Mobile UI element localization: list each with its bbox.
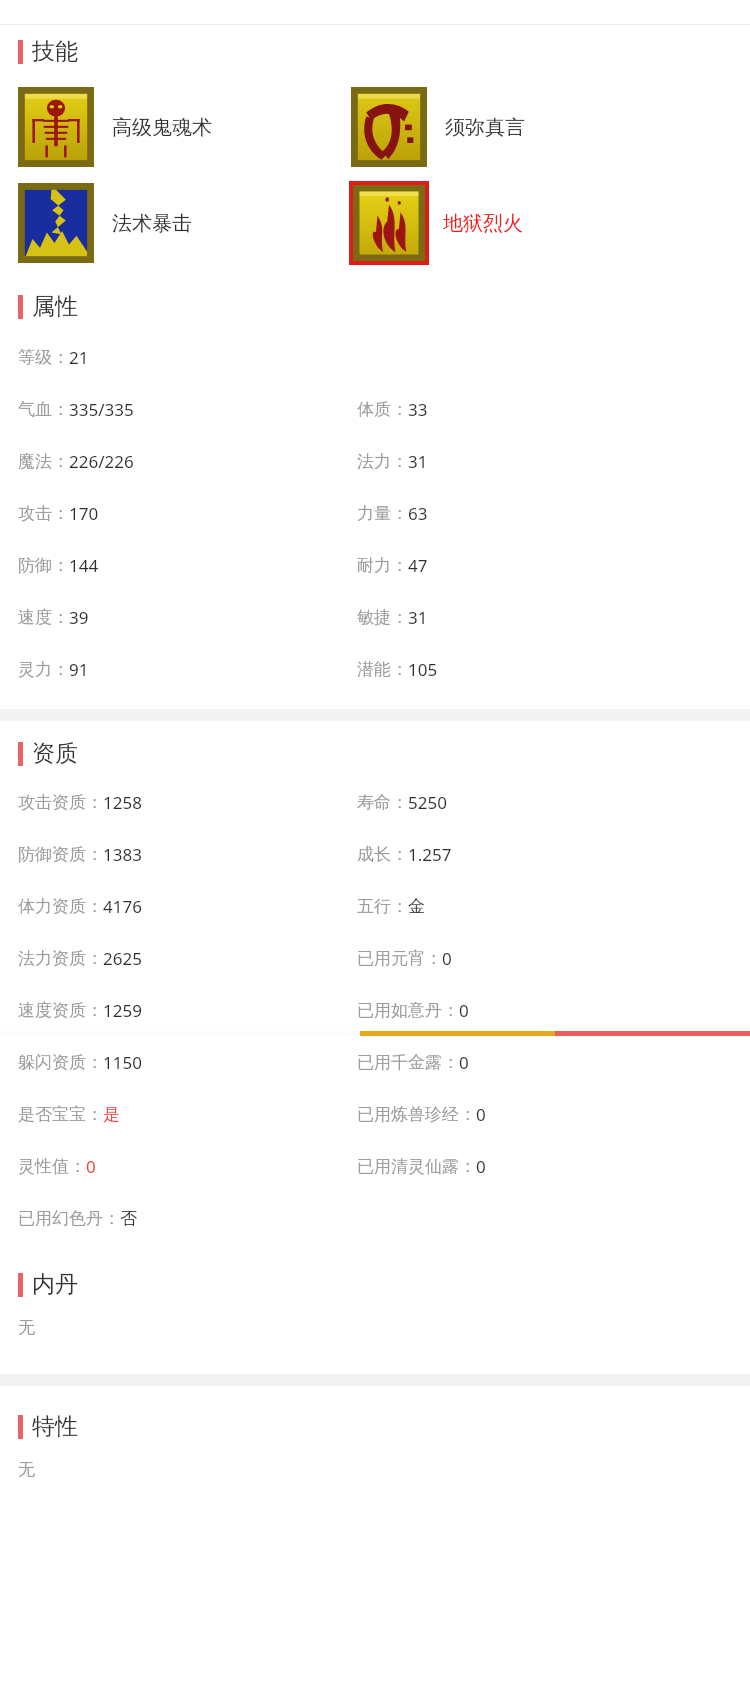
staticText: 速度： [18, 607, 69, 628]
other: 地狱烈火 [353, 185, 425, 261]
staticText: 五行： [357, 896, 408, 917]
staticText: 灵力： [18, 659, 69, 680]
staticText: 是 [103, 1104, 120, 1125]
staticText: 无 [18, 1459, 35, 1480]
staticText: 否 [120, 1208, 137, 1229]
staticText: 已用如意丹： [357, 1000, 459, 1021]
staticText: 法力资质： [18, 948, 103, 969]
staticText: 已用元宵： [357, 948, 442, 969]
staticText: 防御： [18, 555, 69, 576]
staticText: 地狱烈火 [443, 211, 523, 236]
button[interactable]: 高级鬼魂术 [18, 87, 212, 167]
staticText: 1259 [103, 999, 142, 1022]
staticText: 已用幻色丹： [18, 1208, 120, 1229]
staticText: 已用清灵仙露： [357, 1156, 476, 1177]
staticText: 31 [408, 606, 428, 629]
staticText: 47 [408, 554, 428, 577]
staticText: 潜能： [357, 659, 408, 680]
other: 法术暴击 [18, 183, 94, 263]
staticText: 0 [442, 947, 452, 970]
staticText: 0 [459, 999, 469, 1022]
staticText: 无 [18, 1317, 35, 1338]
staticText: 内丹 [32, 1270, 78, 1299]
staticText: 资质 [32, 739, 78, 768]
staticText: 气血： [18, 399, 69, 420]
staticText: 耐力： [357, 555, 408, 576]
staticText: 等级： [18, 347, 69, 368]
staticText: 144 [69, 554, 99, 577]
staticText: 金 [408, 896, 425, 917]
staticText: 速度资质： [18, 1000, 103, 1021]
other: 须弥真言 [351, 87, 427, 167]
staticText: 4176 [103, 895, 142, 918]
staticText: 2625 [103, 947, 142, 970]
button[interactable]: 法术暴击 [18, 183, 192, 263]
staticText: 1383 [103, 843, 142, 866]
staticText: 攻击： [18, 503, 69, 524]
staticText: 体质： [357, 399, 408, 420]
staticText: 1.257 [408, 843, 452, 866]
staticText: 5250 [408, 791, 447, 814]
staticText: 0 [476, 1103, 486, 1126]
staticText: 31 [408, 450, 428, 473]
staticText: 91 [69, 658, 89, 681]
staticText: 0 [476, 1155, 486, 1178]
staticText: 敏捷： [357, 607, 408, 628]
staticText: 33 [408, 398, 428, 421]
staticText: 成长： [357, 844, 408, 865]
staticText: 力量： [357, 503, 408, 524]
staticText: 躲闪资质： [18, 1052, 103, 1073]
staticText: 法术暴击 [112, 211, 192, 236]
staticText: 105 [408, 658, 438, 681]
staticText: 魔法： [18, 451, 69, 472]
staticText: 寿命： [357, 792, 408, 813]
staticText: 须弥真言 [445, 115, 525, 140]
staticText: 0 [86, 1155, 96, 1178]
staticText: 39 [69, 606, 89, 629]
staticText: 170 [69, 502, 99, 525]
staticText: 特性 [32, 1412, 78, 1441]
staticText: 灵性值： [18, 1156, 86, 1177]
staticText: 21 [69, 346, 89, 369]
staticText: 1150 [103, 1051, 142, 1074]
button[interactable]: 须弥真言 [351, 87, 525, 167]
staticText: 226/226 [69, 450, 134, 473]
staticText: 技能 [32, 37, 78, 66]
staticText: 是否宝宝： [18, 1104, 103, 1125]
staticText: 已用千金露： [357, 1052, 459, 1073]
button[interactable]: 地狱烈火 [349, 181, 523, 265]
staticText: 法力： [357, 451, 408, 472]
staticText: 63 [408, 502, 428, 525]
staticText: 攻击资质： [18, 792, 103, 813]
staticText: 高级鬼魂术 [112, 115, 212, 140]
staticText: 1258 [103, 791, 142, 814]
staticText: 已用炼兽珍经： [357, 1104, 476, 1125]
staticText: 335/335 [69, 398, 134, 421]
staticText: 体力资质： [18, 896, 103, 917]
staticText: 0 [459, 1051, 469, 1074]
staticText: 属性 [32, 292, 78, 321]
other: 高级鬼魂术 [18, 87, 94, 167]
staticText: 防御资质： [18, 844, 103, 865]
